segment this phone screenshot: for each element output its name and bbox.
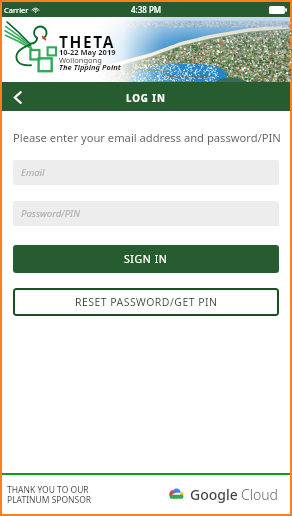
staticText: THANK YOU TO OUR PLATINUM SPONSOR (7, 484, 92, 505)
staticText: SIGN IN (124, 252, 168, 266)
staticText: The Tipping Point (59, 62, 121, 72)
staticText: Email (21, 166, 45, 179)
button[interactable]: Back (2, 83, 32, 112)
staticText: Carrier (4, 5, 29, 15)
staticText: 10-22 May 2019 (59, 47, 116, 57)
button[interactable]: Email (13, 160, 279, 185)
staticText: Cloud (241, 485, 278, 504)
staticText: Wollongong (59, 55, 102, 65)
staticText: Password/PIN (21, 207, 80, 220)
staticText: LOG IN (126, 92, 166, 105)
staticText: Please enter your email address and pass… (13, 130, 281, 145)
button[interactable]: Password/PIN (13, 201, 279, 226)
staticText: RESET PASSWORD/GET PIN (75, 295, 218, 309)
staticText: THETA (59, 31, 116, 52)
button[interactable]: RESET PASSWORD/GET PIN (13, 288, 279, 316)
staticText: Google (190, 485, 238, 504)
staticText: 4:38 PM (131, 4, 162, 15)
button[interactable]: SIGN IN (13, 245, 279, 273)
